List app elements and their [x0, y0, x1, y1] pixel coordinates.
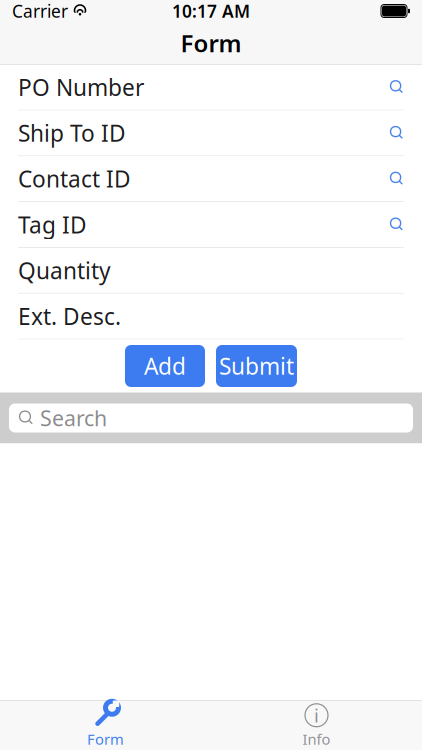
- staticText: Submit: [219, 351, 294, 381]
- staticText: Form: [87, 729, 124, 749]
- button[interactable]: Contact ID: [0, 156, 422, 202]
- staticText: Form: [180, 27, 241, 59]
- staticText: Info: [302, 729, 330, 749]
- staticText: Quantity: [18, 255, 111, 285]
- staticText: Ship To ID: [18, 118, 126, 148]
- staticText: PO Number: [18, 72, 144, 102]
- staticText: Ext. Desc.: [18, 301, 121, 331]
- staticText: Search: [40, 404, 107, 432]
- staticText: Carrier: [12, 0, 68, 22]
- button[interactable]: Submit: [216, 345, 297, 387]
- button[interactable]: Ext. Desc.: [0, 294, 422, 339]
- staticText: i: [314, 703, 319, 728]
- button[interactable]: Search: [0, 392, 422, 443]
- staticText: 10:17 AM: [172, 0, 250, 22]
- button[interactable]: Quantity: [0, 248, 422, 294]
- button[interactable]: Add: [125, 345, 205, 387]
- staticText: Add: [144, 351, 186, 381]
- staticText: Tag ID: [18, 209, 87, 240]
- button[interactable]: PO Number: [0, 65, 422, 110]
- button[interactable]: Tag ID: [0, 202, 422, 248]
- button[interactable]: i: [211, 701, 422, 750]
- staticText: Contact ID: [18, 164, 131, 194]
- button[interactable]: Form: [0, 701, 211, 750]
- button[interactable]: Ship To ID: [0, 110, 422, 156]
